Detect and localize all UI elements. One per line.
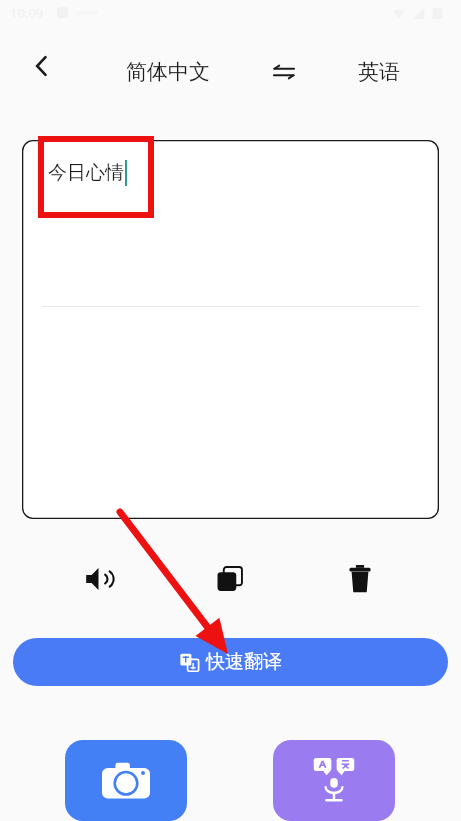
- staticText: 今日心情: [48, 161, 124, 185]
- button[interactable]: 今日心情: [22, 140, 439, 519]
- button[interactable]: Voice translate: [273, 740, 395, 821]
- button[interactable]: Speak: [78, 557, 122, 601]
- staticText: 英语: [358, 59, 400, 85]
- button[interactable]: Back: [20, 44, 64, 88]
- button[interactable]: Copy: [208, 557, 252, 601]
- staticText: 简体中文: [126, 59, 210, 85]
- button[interactable]: 快速翻译: [13, 638, 448, 686]
- button[interactable]: Delete: [338, 557, 382, 601]
- button[interactable]: Swap languages: [262, 50, 306, 94]
- button[interactable]: 英语: [336, 50, 422, 94]
- button[interactable]: Camera translate: [65, 740, 187, 821]
- staticText: 快速翻译: [206, 650, 282, 674]
- button[interactable]: 简体中文: [104, 50, 232, 94]
